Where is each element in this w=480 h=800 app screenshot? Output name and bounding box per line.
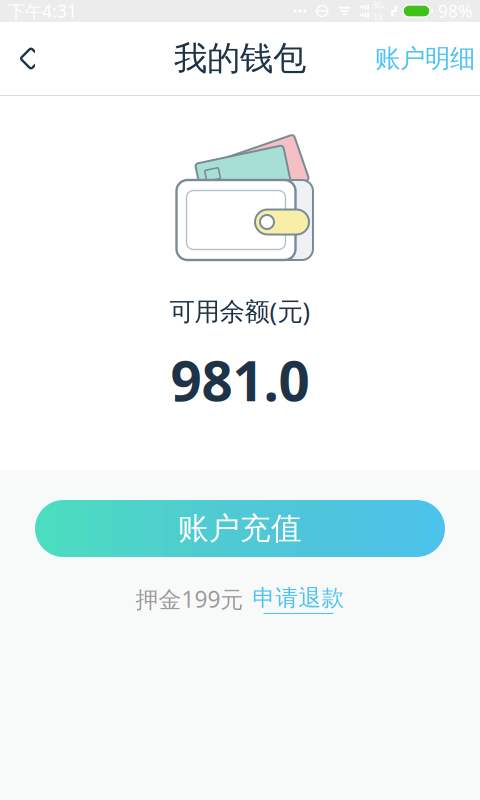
staticText: 账户充值 [178, 510, 302, 547]
staticText: 下午4:31 [8, 0, 77, 22]
staticText: 1X [373, 11, 383, 23]
staticText: 981.0 [170, 344, 309, 416]
staticText: 98% [438, 0, 472, 22]
staticText: 我的钱包 [174, 38, 306, 79]
staticText: 申请退款 [252, 584, 344, 612]
button[interactable]: Back [0, 22, 62, 95]
button[interactable]: 押金199元 [123, 579, 356, 619]
staticText: 可用余额(元) [169, 294, 310, 328]
staticText: 3G [372, 0, 384, 11]
staticText: 账户明细 [375, 43, 475, 74]
staticText: 押金199元 [135, 584, 243, 614]
button[interactable]: 账户充值 [35, 500, 445, 557]
button[interactable]: 账户明细 [370, 22, 480, 95]
